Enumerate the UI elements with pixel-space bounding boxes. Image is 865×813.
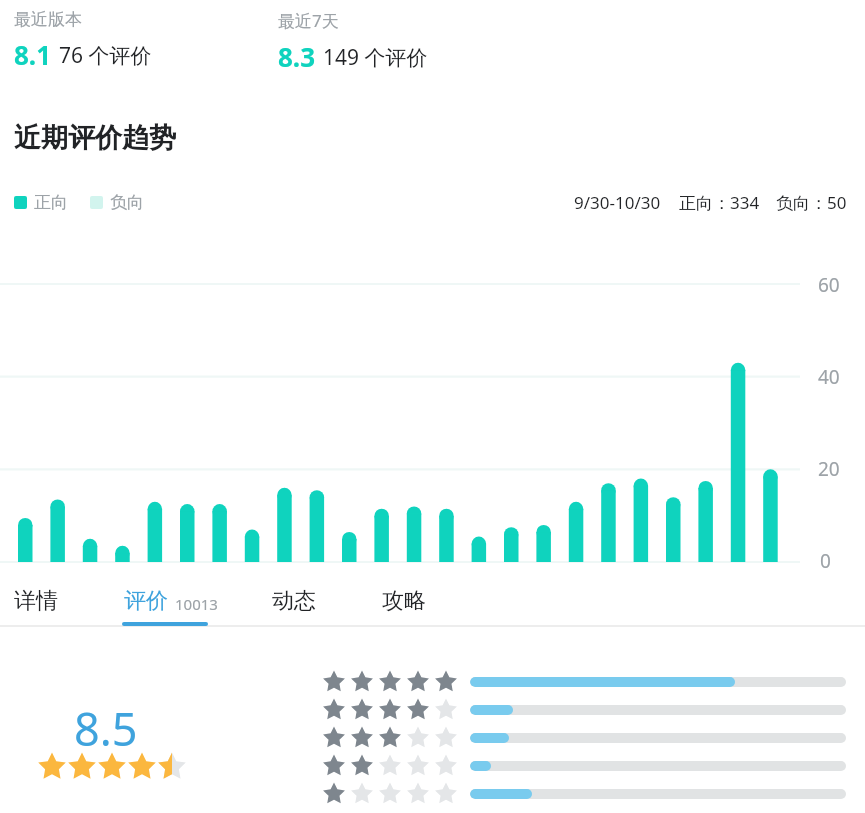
staticText: 近期评价趋势 (14, 121, 176, 155)
staticText: 149 个评价 (323, 43, 428, 72)
staticText: 最近版本 (14, 9, 82, 30)
staticText: 60 (818, 272, 840, 298)
staticText: 8.3 (278, 39, 316, 74)
staticText: 详情 (14, 587, 58, 615)
staticText: 攻略 (382, 587, 426, 615)
staticText: 76 个评价 (59, 41, 152, 70)
staticText: 20 (818, 456, 840, 482)
button[interactable]: 攻略 (382, 578, 426, 624)
staticText: 0 (820, 548, 831, 574)
staticText: 正向：334 (679, 191, 760, 214)
staticText: 负向：50 (776, 191, 847, 214)
staticText: 评价 (124, 587, 168, 615)
button[interactable]: 详情 (14, 578, 58, 624)
staticText: 8.1 (14, 37, 52, 72)
staticText: 9/30-10/30 (574, 191, 661, 214)
staticText: 10013 (175, 594, 218, 614)
staticText: 最近7天 (278, 9, 339, 32)
button[interactable]: 动态 (272, 578, 316, 624)
staticText: 40 (818, 364, 840, 390)
staticText: 动态 (272, 587, 316, 615)
staticText: 正向 (34, 192, 68, 213)
staticText: 负向 (110, 192, 144, 213)
button[interactable]: 评价 (124, 578, 218, 624)
staticText: 8.5 (74, 698, 138, 759)
